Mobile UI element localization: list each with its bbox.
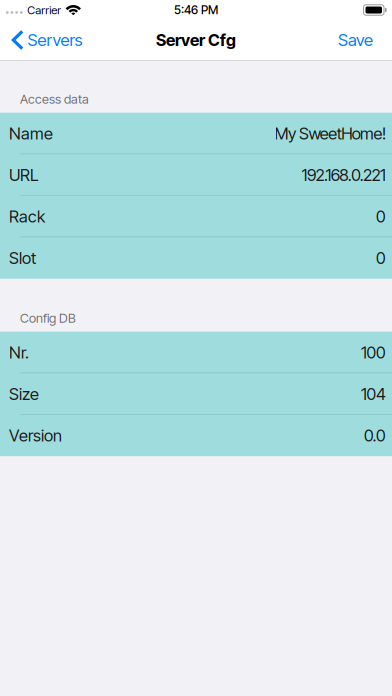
button[interactable]: Version bbox=[0, 415, 392, 456]
staticText: Version bbox=[9, 425, 62, 445]
button[interactable]: Size bbox=[0, 373, 392, 415]
button[interactable]: Rack bbox=[0, 196, 392, 237]
staticText: 0 bbox=[376, 248, 386, 268]
staticText: Carrier bbox=[27, 3, 61, 17]
staticText: Size bbox=[9, 384, 39, 404]
button[interactable]: Save bbox=[324, 20, 392, 60]
staticText: Server Cfg bbox=[156, 30, 236, 50]
staticText: Servers bbox=[28, 30, 83, 50]
button[interactable]: Servers bbox=[0, 20, 91, 60]
staticText: Name bbox=[9, 123, 53, 143]
button[interactable]: Name bbox=[0, 113, 392, 154]
staticText: Config DB bbox=[20, 310, 76, 326]
staticText: Access data bbox=[20, 91, 89, 107]
staticText: Save bbox=[338, 30, 373, 50]
button[interactable]: Nr. bbox=[0, 332, 392, 373]
staticText: 100 bbox=[361, 342, 386, 362]
staticText: Rack bbox=[9, 206, 45, 226]
staticText: URL bbox=[9, 165, 39, 185]
staticText: Slot bbox=[9, 248, 36, 268]
staticText: 0 bbox=[376, 206, 386, 226]
staticText: Nr. bbox=[9, 342, 29, 362]
staticText: 0.0 bbox=[364, 425, 386, 445]
button[interactable]: URL bbox=[0, 154, 392, 196]
staticText: 192.168.0.221 bbox=[302, 165, 386, 185]
staticText: My SweetHome! bbox=[275, 123, 386, 143]
staticText: 5:46 PM bbox=[174, 3, 218, 17]
button[interactable]: Slot bbox=[0, 237, 392, 279]
staticText: 104 bbox=[361, 384, 386, 404]
